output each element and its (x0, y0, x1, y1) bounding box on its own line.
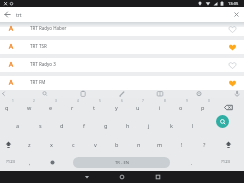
button[interactable]: TRT Radyo Haber (0, 22, 244, 36)
staticText: w (27, 104, 32, 111)
button[interactable] (2, 9, 13, 20)
button[interactable]: z (19, 136, 39, 152)
button[interactable]: ?123 (213, 154, 239, 170)
button[interactable]: TRT TSR (0, 40, 244, 54)
button[interactable]: k (161, 117, 181, 133)
button[interactable]: b (107, 136, 127, 152)
button[interactable]: q (0, 99, 17, 115)
staticText: TRT TSR (30, 43, 47, 49)
staticText: TRT FM (30, 79, 46, 85)
staticText: , (29, 159, 31, 166)
staticText: 6 (121, 99, 123, 103)
staticText: q (5, 104, 9, 111)
staticText: y (115, 104, 118, 111)
button[interactable] (0, 136, 16, 152)
button[interactable]: TRT Radyo 3 (0, 58, 244, 72)
button[interactable]: c (63, 136, 83, 152)
staticText: t (93, 104, 95, 111)
staticText: 1 (12, 99, 14, 103)
button[interactable]: g (96, 117, 116, 133)
staticText: e (49, 104, 53, 111)
staticText: k (170, 122, 173, 129)
staticText: b (115, 141, 119, 148)
button[interactable]: p (193, 99, 213, 115)
staticText: l (192, 122, 194, 129)
staticText: n (137, 141, 141, 148)
button[interactable] (216, 99, 241, 115)
staticText: 9 (186, 99, 188, 103)
staticText: p (201, 104, 205, 111)
staticText: f (83, 122, 85, 129)
button[interactable]: TR - EN (64, 154, 178, 170)
staticText: d (60, 122, 64, 129)
button[interactable]: i (150, 99, 170, 115)
button[interactable] (226, 41, 239, 54)
staticText: 7 (142, 99, 144, 103)
staticText: u (136, 104, 140, 111)
button[interactable]: a (8, 117, 28, 133)
button[interactable]: w (19, 99, 39, 115)
button[interactable]: y (106, 99, 126, 115)
staticText: 5 (99, 99, 101, 103)
button[interactable] (231, 9, 242, 20)
staticText: 8 (164, 99, 166, 103)
staticText: i (159, 104, 161, 111)
staticText: m (157, 141, 163, 148)
button[interactable]: , (20, 154, 40, 170)
staticText: z (28, 141, 31, 148)
staticText: ?123 (6, 159, 16, 165)
staticText: h (126, 122, 130, 129)
button[interactable]: r (62, 99, 82, 115)
button[interactable]: ?123 (0, 154, 21, 170)
button[interactable]: n (129, 136, 149, 152)
staticText: a (16, 122, 20, 129)
button[interactable]: e (41, 99, 61, 115)
button[interactable]: ? (194, 136, 214, 152)
staticText: ? (203, 141, 206, 148)
button[interactable] (111, 171, 133, 183)
button[interactable] (147, 171, 169, 183)
staticText: TRT Radyo 3 (30, 61, 56, 67)
staticText: 13:05 (228, 1, 239, 6)
staticText: . (191, 159, 193, 166)
button[interactable]: x (41, 136, 61, 152)
button[interactable]: o (171, 99, 191, 115)
staticText: ?123 (221, 159, 231, 165)
staticText: 3 (55, 99, 57, 103)
staticText: 4 (77, 99, 79, 103)
staticText: r (71, 104, 74, 111)
staticText: j (148, 122, 150, 129)
button[interactable]: s (30, 117, 50, 133)
button[interactable]: l (183, 117, 203, 133)
button[interactable]: TRT FM (0, 76, 244, 90)
button[interactable] (226, 59, 239, 72)
staticText: g (104, 122, 108, 129)
button[interactable] (42, 154, 62, 170)
button[interactable]: m (150, 136, 170, 152)
button[interactable]: u (128, 99, 148, 115)
staticText: TR - EN (115, 160, 129, 166)
staticText: x (50, 141, 53, 148)
button[interactable]: h (118, 117, 138, 133)
button[interactable]: f (74, 117, 94, 133)
button[interactable]: ! (172, 136, 192, 152)
staticText: o (179, 104, 183, 111)
button[interactable] (216, 115, 229, 128)
staticText: s (39, 122, 42, 129)
staticText: 2 (33, 99, 35, 103)
button[interactable] (226, 23, 239, 36)
button[interactable] (76, 171, 98, 183)
button[interactable]: j (139, 117, 159, 133)
button[interactable]: d (52, 117, 72, 133)
button[interactable] (216, 136, 241, 152)
staticText: 0 (208, 99, 210, 103)
button[interactable] (226, 77, 239, 90)
staticText: c (72, 141, 75, 148)
staticText: ! (181, 141, 183, 148)
staticText: TRT Radyo Haber (30, 25, 67, 31)
staticText: trt (16, 12, 22, 19)
button[interactable]: t (84, 99, 104, 115)
staticText: v (94, 141, 97, 148)
button[interactable]: v (85, 136, 105, 152)
